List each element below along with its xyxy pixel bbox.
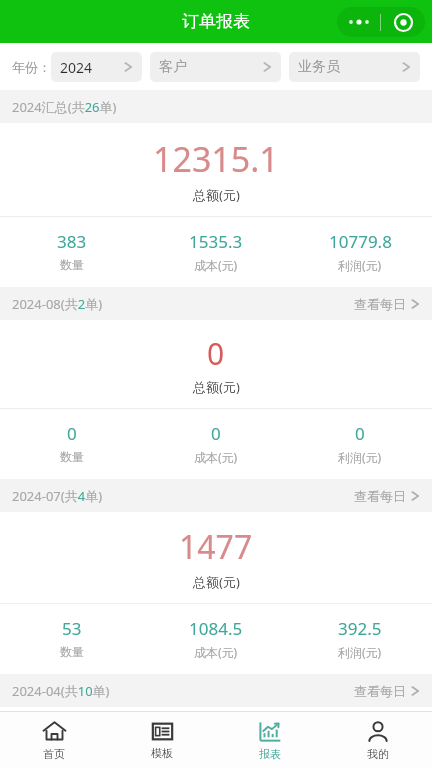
staticText: 2024-04(共10单) xyxy=(12,682,110,700)
staticText: 数量 xyxy=(60,644,84,659)
button[interactable]: 首页 xyxy=(0,712,108,768)
staticText: 0 xyxy=(211,422,221,445)
staticText: 10779.8 xyxy=(329,230,392,253)
staticText: 报表 xyxy=(259,747,281,761)
button[interactable]: Close xyxy=(381,7,425,37)
staticText: 0 xyxy=(67,422,77,445)
staticText: 客户 xyxy=(159,58,187,76)
button[interactable]: 报表 xyxy=(216,712,324,768)
staticText: 53 xyxy=(62,617,82,640)
staticText: 查看每日 xyxy=(354,488,406,504)
button[interactable]: 2024汇总(共26单) xyxy=(0,90,432,123)
staticText: 利润(元) xyxy=(338,257,382,273)
staticText: 总额(元) xyxy=(193,573,240,591)
staticText: 数量 xyxy=(60,257,84,272)
button[interactable]: 业务员 xyxy=(289,52,420,82)
button[interactable]: 2024-07(共4单) xyxy=(0,479,432,512)
staticText: 查看每日 xyxy=(354,296,406,312)
staticText: 1477 xyxy=(179,525,253,569)
staticText: 12315.1 xyxy=(153,136,279,182)
staticText: 0 xyxy=(207,333,225,374)
staticText: 年份： xyxy=(12,59,51,75)
staticText: 我的 xyxy=(367,747,389,761)
button[interactable]: 2024-04(共10单) xyxy=(0,674,432,707)
staticText: 总额(元) xyxy=(193,378,240,396)
staticText: 1084.5 xyxy=(189,617,243,640)
staticText: 首页 xyxy=(43,747,65,761)
button[interactable]: 年份： xyxy=(12,52,142,82)
staticText: 利润(元) xyxy=(338,644,382,660)
staticText: 2024 xyxy=(60,58,93,77)
staticText: 1535.3 xyxy=(189,230,243,253)
staticText: 查看每日 xyxy=(354,683,406,699)
button[interactable]: 模板 xyxy=(108,712,216,768)
button[interactable]: 2024-08(共2单) xyxy=(0,287,432,320)
staticText: 订单报表 xyxy=(182,11,250,32)
staticText: 383 xyxy=(57,230,87,253)
button[interactable]: More xyxy=(337,7,380,37)
staticText: 成本(元) xyxy=(194,257,238,273)
button[interactable]: 客户 xyxy=(150,52,281,82)
staticText: 392.5 xyxy=(338,617,382,640)
staticText: 2024-08(共2单) xyxy=(12,295,103,313)
staticText: 数量 xyxy=(60,449,84,464)
staticText: 0 xyxy=(355,422,365,445)
staticText: 成本(元) xyxy=(194,644,238,660)
staticText: 2024-07(共4单) xyxy=(12,487,103,505)
staticText: 成本(元) xyxy=(194,449,238,465)
button[interactable]: 我的 xyxy=(324,712,432,768)
staticText: 2024汇总(共26单) xyxy=(12,98,117,116)
staticText: 总额(元) xyxy=(193,186,240,204)
staticText: 模板 xyxy=(151,746,173,760)
staticText: 业务员 xyxy=(298,58,340,76)
staticText: 利润(元) xyxy=(338,449,382,465)
